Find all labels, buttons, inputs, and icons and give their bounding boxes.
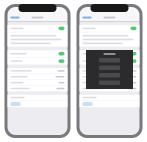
button[interactable] — [79, 86, 139, 91]
button[interactable] — [79, 95, 139, 100]
button[interactable] — [7, 95, 67, 100]
button[interactable] — [7, 58, 67, 65]
button[interactable] — [7, 50, 67, 57]
button[interactable] — [7, 14, 67, 21]
button[interactable] — [99, 73, 120, 77]
button[interactable] — [79, 25, 139, 32]
button[interactable] — [7, 80, 67, 85]
button[interactable] — [79, 80, 139, 85]
button[interactable] — [7, 25, 67, 32]
button[interactable] — [7, 68, 67, 74]
button[interactable] — [79, 50, 139, 57]
button[interactable] — [79, 14, 139, 21]
button[interactable] — [99, 80, 120, 85]
button[interactable] — [7, 86, 67, 91]
button[interactable] — [79, 74, 139, 79]
button[interactable] — [79, 58, 139, 65]
button[interactable] — [79, 68, 139, 74]
button[interactable] — [7, 74, 67, 79]
button[interactable] — [7, 101, 67, 107]
button[interactable] — [79, 101, 139, 107]
